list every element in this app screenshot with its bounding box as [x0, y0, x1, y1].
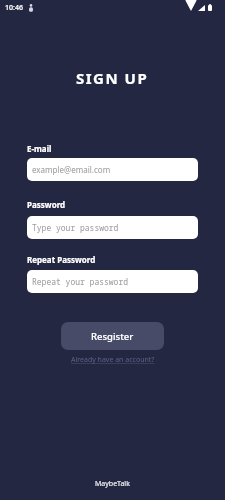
staticText: E-mail [27, 143, 52, 154]
button[interactable]: Resgister [61, 322, 164, 350]
staticText: Password [27, 199, 66, 210]
staticText: Repeat your password [32, 276, 128, 287]
button[interactable]: example@email.com [27, 158, 198, 181]
staticText: Type your password [32, 222, 119, 233]
staticText: Resgister [91, 330, 134, 343]
staticText: Repeat Password [27, 254, 96, 265]
staticText: Already have an account? [71, 355, 155, 365]
button[interactable]: Already have an account? [71, 353, 155, 367]
staticText: MaybeTalk [95, 479, 130, 489]
staticText: 10:46 [5, 3, 23, 13]
button[interactable]: Type your password [27, 216, 198, 239]
staticText: example@email.com [32, 164, 111, 175]
button[interactable]: Repeat your password [27, 270, 198, 293]
staticText: SIGN UP [76, 68, 149, 88]
